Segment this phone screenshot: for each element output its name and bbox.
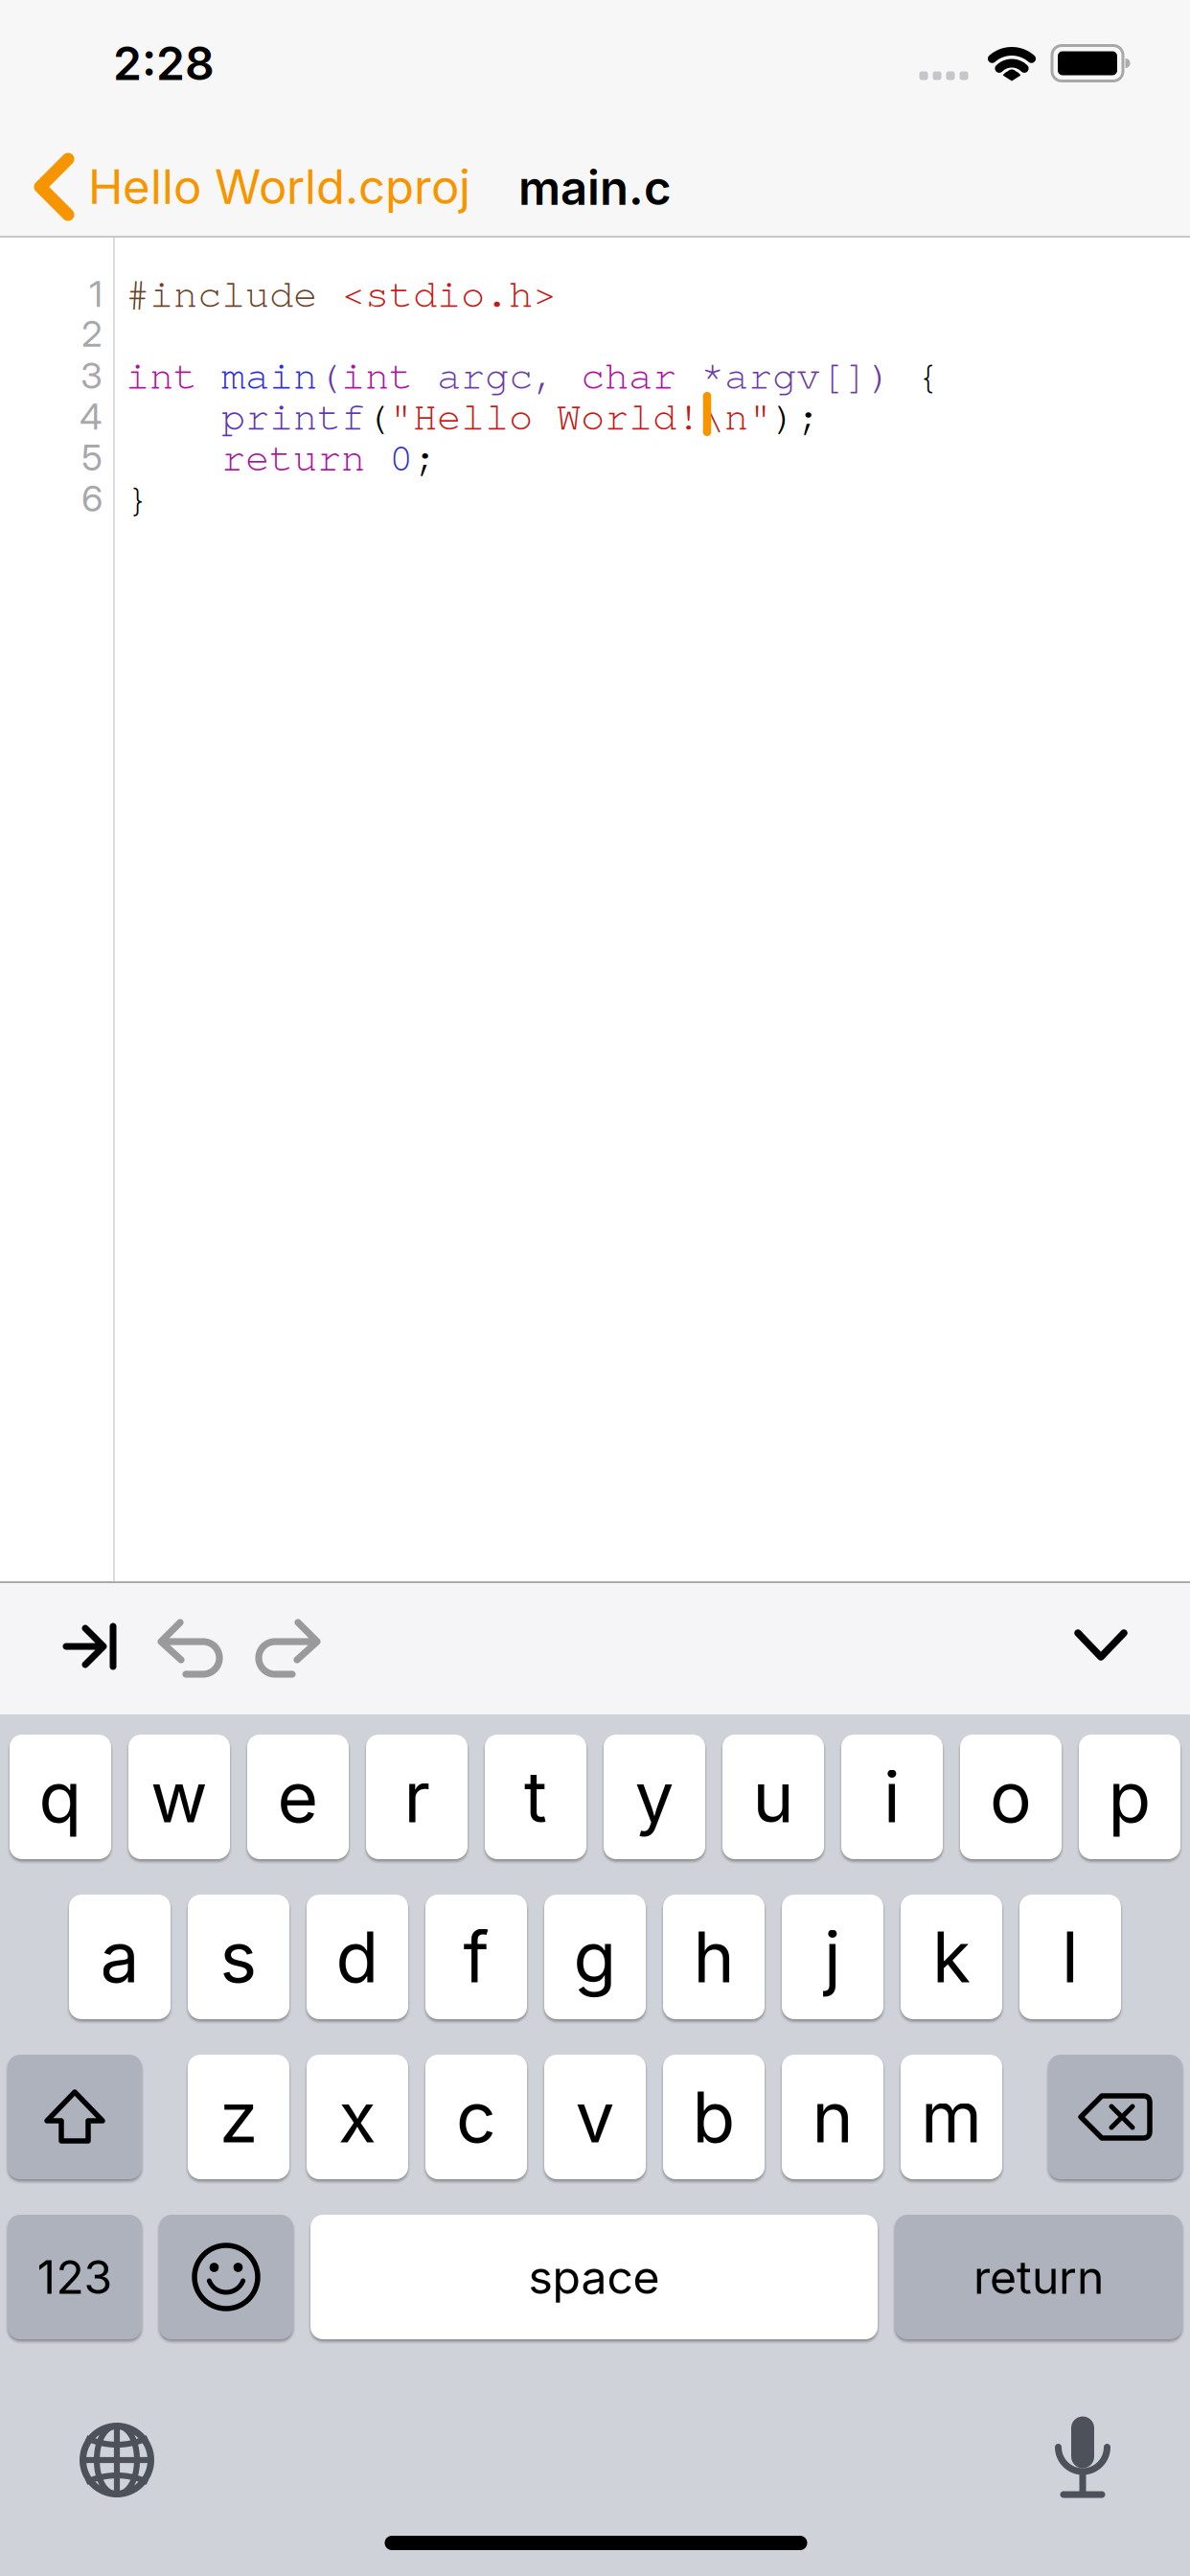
staticText: 2:28: [113, 35, 215, 91]
button[interactable]: Hello World.cproj: [36, 157, 470, 217]
staticText: (: [317, 350, 341, 399]
button[interactable]: f: [425, 1895, 527, 2019]
staticText: <stdio.h>: [341, 268, 557, 317]
button[interactable]: v: [544, 2055, 646, 2179]
staticText: #include: [126, 268, 317, 317]
staticText: space: [528, 2249, 660, 2305]
staticText: i: [883, 1755, 901, 1839]
staticText: u: [753, 1755, 794, 1839]
staticText: l: [1062, 1915, 1079, 1999]
button[interactable]: y: [604, 1735, 705, 1859]
button[interactable]: t: [485, 1735, 586, 1859]
staticText: ;: [413, 432, 437, 481]
button[interactable]: q: [10, 1735, 111, 1859]
staticText: p: [1108, 1755, 1151, 1839]
staticText: return: [973, 2249, 1104, 2305]
button[interactable]: n: [782, 2055, 883, 2179]
button[interactable]: [1075, 1630, 1127, 1661]
button[interactable]: [160, 1621, 219, 1675]
staticText: main: [221, 350, 317, 399]
staticText: c: [456, 2075, 496, 2159]
staticText: w: [150, 1755, 208, 1839]
staticText: (: [365, 391, 389, 440]
staticText: {: [892, 350, 940, 399]
button[interactable]: p: [1079, 1735, 1180, 1859]
button[interactable]: j: [782, 1895, 883, 2019]
button[interactable]: r: [366, 1735, 468, 1859]
staticText: 4: [80, 394, 103, 438]
button[interactable]: s: [188, 1895, 289, 2019]
button[interactable]: 123: [8, 2215, 142, 2339]
staticText: q: [39, 1755, 82, 1839]
staticText: "Hello World!\n": [389, 391, 772, 440]
staticText: f: [463, 1915, 489, 1999]
button[interactable]: [80, 2423, 154, 2497]
staticText: 6: [81, 476, 103, 520]
button[interactable]: b: [663, 2055, 765, 2179]
button[interactable]: [159, 2215, 293, 2339]
staticText: d: [336, 1915, 379, 1999]
staticText: return: [126, 432, 365, 481]
staticText: Hello World.cproj: [88, 159, 470, 215]
staticText: *argv[]): [676, 350, 892, 399]
staticText: z: [219, 2075, 258, 2159]
staticText: j: [824, 1915, 841, 1999]
staticText: char: [581, 350, 676, 399]
staticText: b: [692, 2075, 735, 2159]
staticText: 0: [389, 432, 413, 481]
staticText: int: [126, 350, 221, 399]
button[interactable]: w: [128, 1735, 230, 1859]
staticText: 3: [80, 353, 103, 397]
button[interactable]: [64, 1625, 118, 1669]
staticText: r: [404, 1755, 430, 1839]
staticText: x: [338, 2075, 377, 2159]
button[interactable]: u: [722, 1735, 824, 1859]
staticText: }: [126, 473, 149, 522]
button[interactable]: d: [307, 1895, 408, 2019]
staticText: argc,: [413, 350, 581, 399]
button[interactable]: k: [901, 1895, 1002, 2019]
button[interactable]: m: [901, 2055, 1002, 2179]
button[interactable]: [1048, 2055, 1182, 2179]
staticText: 123: [37, 2249, 113, 2305]
staticText: t: [524, 1755, 547, 1839]
staticText: h: [693, 1915, 734, 1999]
button[interactable]: g: [544, 1895, 646, 2019]
button[interactable]: z: [188, 2055, 289, 2179]
staticText: g: [573, 1915, 617, 1999]
button[interactable]: x: [307, 2055, 408, 2179]
staticText: o: [990, 1755, 1032, 1839]
staticText: 2: [81, 312, 103, 356]
button[interactable]: space: [310, 2215, 878, 2339]
staticText: 5: [81, 435, 103, 479]
staticText: v: [575, 2075, 615, 2159]
button[interactable]: a: [69, 1895, 171, 2019]
staticText: k: [932, 1915, 971, 1999]
button[interactable]: return: [895, 2215, 1182, 2339]
staticText: n: [812, 2075, 853, 2159]
staticText: );: [772, 391, 820, 440]
button[interactable]: [1058, 2416, 1108, 2498]
button[interactable]: e: [247, 1735, 349, 1859]
staticText: e: [277, 1755, 319, 1839]
staticText: [365, 432, 389, 481]
staticText: y: [635, 1755, 674, 1839]
button[interactable]: h: [663, 1895, 765, 2019]
button[interactable]: [8, 2055, 142, 2179]
staticText: m: [921, 2075, 982, 2159]
staticText: main.c: [518, 159, 672, 216]
button[interactable]: o: [960, 1735, 1062, 1859]
button[interactable]: l: [1019, 1895, 1121, 2019]
staticText: 1: [89, 271, 103, 316]
staticText: a: [100, 1915, 139, 1999]
button[interactable]: [259, 1621, 318, 1675]
button[interactable]: i: [841, 1735, 943, 1859]
staticText: printf: [126, 391, 365, 440]
staticText: s: [220, 1915, 257, 1999]
button[interactable]: c: [425, 2055, 527, 2179]
staticText: int: [341, 350, 413, 399]
